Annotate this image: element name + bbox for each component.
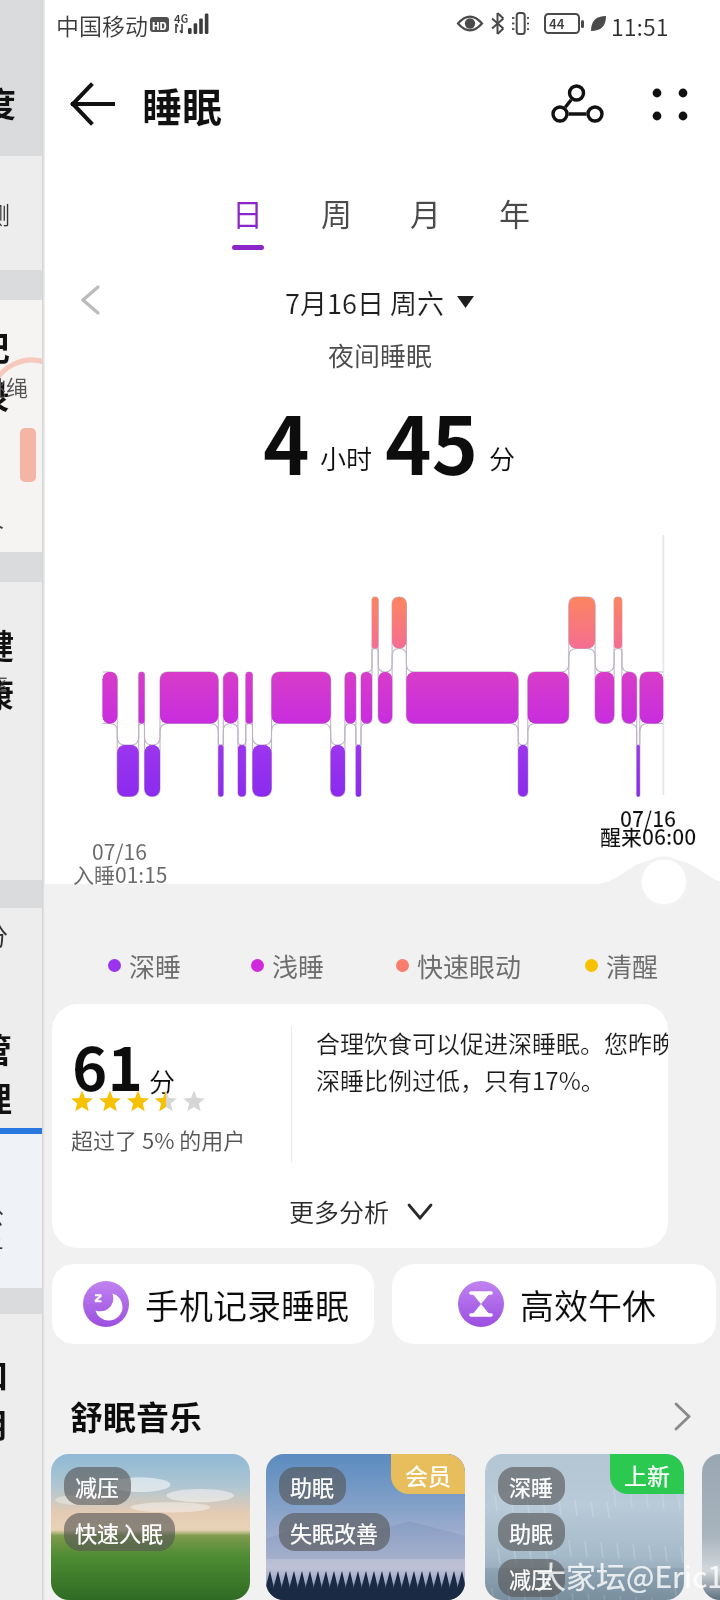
button[interactable]: Back (57, 68, 129, 140)
staticText: 个 (0, 510, 4, 545)
staticText: 度 (0, 78, 16, 127)
button[interactable]: 月 (389, 190, 461, 256)
staticText: 浅睡 (272, 947, 325, 983)
button[interactable]: 周 (300, 190, 372, 256)
staticText: 和用 (0, 1350, 19, 1448)
staticText: 7月16日 周六 (285, 283, 445, 322)
staticText: 07/16 (92, 836, 147, 866)
staticText: 率 (0, 668, 9, 700)
staticText: HD (152, 18, 167, 32)
staticText: 睡眠 (142, 76, 222, 134)
staticText: 深睡 (129, 947, 182, 983)
button[interactable]: 减压 (51, 1454, 250, 1600)
staticText: 45 (385, 383, 479, 497)
button[interactable]: 清醒 (585, 947, 659, 983)
staticText: 助眠 (509, 1516, 554, 1548)
staticText: 入睡01:15 (73, 859, 168, 889)
button[interactable]: Share (541, 68, 613, 140)
staticText: 11:51 (611, 9, 669, 42)
staticText: 管理 (0, 1024, 23, 1122)
button[interactable]: 手机记录睡眠 (52, 1264, 374, 1344)
staticText: 07/16 (620, 803, 677, 833)
staticText: 记录 (0, 322, 21, 420)
button[interactable]: 助眠 (266, 1454, 465, 1600)
staticText: 深睡 (509, 1470, 554, 1502)
staticText: 清醒 (606, 947, 659, 983)
staticText: 更多分析 (289, 1193, 390, 1229)
staticText: 小时 (320, 439, 373, 477)
button[interactable]: More options (634, 68, 706, 140)
staticText: 快速眼动 (417, 947, 522, 983)
staticText: 公斤 (0, 1196, 25, 1266)
staticText: 夜间睡眠 (328, 336, 433, 374)
staticText: 高效午休 (520, 1280, 656, 1329)
staticText: 分 (489, 439, 516, 477)
button[interactable]: 7月16日 周六 (285, 282, 474, 322)
staticText: 跳绳 (0, 370, 29, 402)
staticText: 4G (174, 10, 189, 26)
button[interactable]: Sleep details (639, 857, 689, 907)
button[interactable]: 高效午休 (392, 1264, 716, 1344)
staticText: 快速入眠 (75, 1516, 164, 1548)
staticText: 合理饮食可以促进深睡眠。您昨晚深睡比例过低，只有17%。 (316, 1025, 668, 1097)
staticText: 中国移动 (56, 8, 148, 41)
button[interactable]: 浅睡 (251, 947, 325, 983)
staticText: 年 (499, 190, 530, 235)
staticText: 减压 (75, 1470, 120, 1502)
button[interactable]: Previous day (62, 272, 118, 328)
staticText: 助眠 (290, 1470, 335, 1502)
staticText: 日 (232, 190, 263, 235)
button[interactable]: 深睡 (108, 947, 182, 983)
button[interactable]: 年 (478, 190, 550, 256)
staticText: 周 (321, 190, 352, 235)
staticText: /分钟 (0, 916, 17, 992)
staticText: 减压 (509, 1562, 554, 1594)
staticText: 月 (410, 190, 441, 235)
button[interactable]: 快速眼动 (396, 947, 522, 983)
staticText: 舒眠音乐 (70, 1392, 202, 1440)
staticText: 61 (72, 1021, 143, 1108)
staticText: 超过了 5% 的用户 (71, 1123, 246, 1155)
staticText: 测 (0, 196, 10, 231)
staticText: 手机记录睡眠 (145, 1280, 349, 1329)
staticText: 失眠改善 (290, 1516, 379, 1548)
button[interactable] (702, 1454, 720, 1600)
button[interactable]: 更多分析 (52, 1174, 668, 1248)
button[interactable]: 日 (211, 190, 283, 256)
button[interactable]: 深睡 (485, 1454, 684, 1600)
button[interactable]: 舒眠音乐 (70, 1392, 690, 1440)
staticText: 会员 (405, 1458, 451, 1491)
staticText: 上新 (624, 1458, 670, 1491)
staticText: 健康 (0, 620, 25, 718)
staticText: 44 (549, 14, 565, 33)
staticText: 分 (149, 1062, 176, 1100)
staticText: 醒来06:00 (600, 821, 697, 851)
staticText: 4 (263, 383, 310, 497)
staticText: 大家坛@Eric11 (536, 1553, 720, 1596)
